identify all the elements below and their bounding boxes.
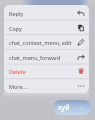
staticText: хуй	[58, 103, 70, 113]
other: Reply	[77, 9, 85, 17]
button[interactable]: хуй	[53, 100, 91, 115]
other: More options	[77, 82, 85, 90]
button[interactable]: More...	[4, 78, 89, 93]
staticText: Copy	[9, 25, 77, 32]
staticText: Reply	[9, 10, 77, 17]
other: Delete	[77, 67, 85, 75]
staticText: 22:36	[73, 106, 84, 111]
other: Edit	[77, 38, 85, 46]
button[interactable]: Reply	[4, 5, 89, 20]
staticText: Delete	[9, 68, 77, 75]
button[interactable]: Copy	[4, 20, 89, 35]
button[interactable]: chat_context_menu_edit	[4, 34, 89, 49]
staticText: More...	[9, 83, 77, 90]
other: Copy	[77, 24, 85, 32]
staticText: chat_menu_forward	[9, 54, 77, 61]
button[interactable]: chat_menu_forward	[4, 49, 89, 64]
other: Forward	[77, 53, 85, 61]
button[interactable]: Delete	[4, 63, 89, 78]
staticText: chat_context_menu_edit	[9, 39, 77, 46]
